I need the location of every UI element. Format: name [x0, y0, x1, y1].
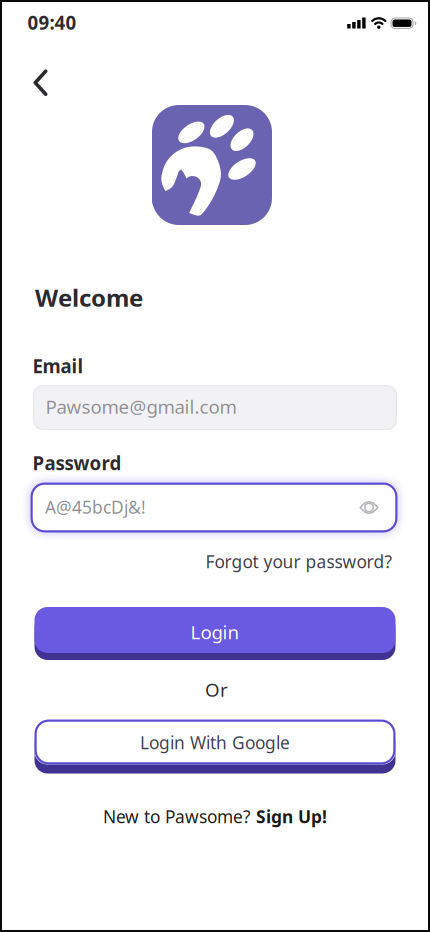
staticText: Login [190, 620, 239, 644]
button[interactable]: New to Pawsome? Sign Up! [103, 805, 327, 828]
button[interactable]: Forgot your password? [205, 550, 392, 573]
staticText: Welcome [35, 282, 143, 313]
staticText: Or [205, 677, 228, 702]
staticText: Login With Google [140, 731, 290, 754]
staticText: 09:40 [27, 10, 76, 35]
button[interactable]: Show password [359, 499, 379, 515]
staticText: Email [32, 354, 83, 378]
button[interactable]: Login [34, 607, 395, 653]
staticText: Forgot your password? [205, 550, 392, 573]
staticText: Pawsome@gmail.com [45, 394, 236, 419]
staticText: New to Pawsome? Sign Up! [103, 805, 327, 828]
button[interactable]: Back [33, 69, 48, 96]
staticText: Password [32, 451, 121, 475]
staticText: A@45bcDj&! [45, 495, 146, 518]
button[interactable]: Login With Google [34, 719, 395, 764]
